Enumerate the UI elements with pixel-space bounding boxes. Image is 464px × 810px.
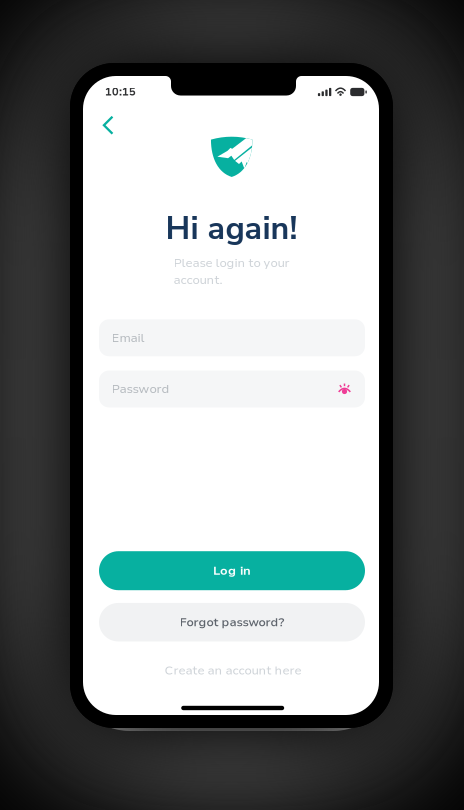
- button[interactable]: Back: [94, 107, 122, 144]
- button[interactable]: Show password: [336, 381, 352, 396]
- button[interactable]: Forgot password?: [99, 603, 365, 641]
- staticText: Password: [111, 380, 169, 398]
- button[interactable]: Log in: [99, 551, 365, 590]
- staticText: Log in: [213, 562, 251, 579]
- staticText: Email: [111, 329, 144, 346]
- staticText: Forgot password?: [179, 614, 284, 630]
- staticText: 10:15: [105, 84, 136, 99]
- staticText: Create an account here: [164, 662, 301, 679]
- staticText: Please login to your account.: [173, 255, 289, 288]
- button[interactable]: Create an account here: [100, 657, 366, 683]
- staticText: Hi again!: [165, 207, 297, 250]
